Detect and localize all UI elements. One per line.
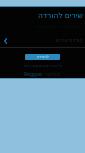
button[interactable]: להורדה	[25, 54, 60, 60]
staticText: כל השירים החדשים ביותר	[23, 63, 63, 68]
staticText: Reggae	[24, 71, 42, 78]
staticText: להורדה	[37, 55, 49, 59]
staticText: · מוזיקה	[43, 71, 61, 78]
button[interactable]: Back	[0, 34, 11, 45]
staticText: הורדת שירים	[56, 37, 83, 44]
staticText: שירים להורדה	[38, 10, 83, 20]
